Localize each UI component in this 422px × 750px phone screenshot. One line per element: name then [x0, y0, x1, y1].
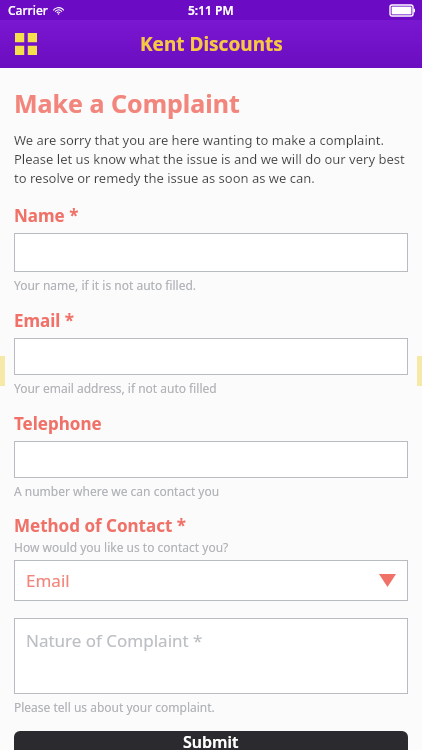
staticText: Email *	[14, 309, 75, 332]
staticText: Telephone	[14, 412, 102, 435]
button[interactable]: Submit	[14, 731, 408, 750]
button[interactable]: Menu	[8, 26, 44, 62]
staticText: Kent Discounts	[140, 31, 283, 57]
button[interactable]: Nature of Complaint *	[14, 618, 408, 694]
staticText: Name *	[14, 204, 79, 227]
button[interactable]	[14, 233, 408, 272]
button[interactable]	[14, 338, 408, 375]
staticText: Carrier	[8, 2, 48, 18]
staticText: Submit	[183, 731, 239, 750]
staticText: We are sorry that you are here wanting t…	[14, 131, 408, 187]
button[interactable]	[14, 441, 408, 478]
staticText: A number where we can contact you	[14, 483, 220, 499]
staticText: Your name, if it is not auto filled.	[14, 277, 197, 293]
staticText: Email	[26, 569, 379, 592]
staticText: Method of Contact *	[14, 514, 186, 537]
staticText: 5:11 PM	[188, 2, 234, 18]
staticText: Make a Complaint	[14, 86, 240, 120]
staticText: Please tell us about your complaint.	[14, 699, 215, 715]
staticText: Your email address, if not auto filled	[14, 380, 217, 396]
staticText: Nature of Complaint *	[26, 629, 203, 652]
button[interactable]: Email	[14, 560, 408, 601]
staticText: How would you like us to contact you?	[14, 539, 229, 555]
